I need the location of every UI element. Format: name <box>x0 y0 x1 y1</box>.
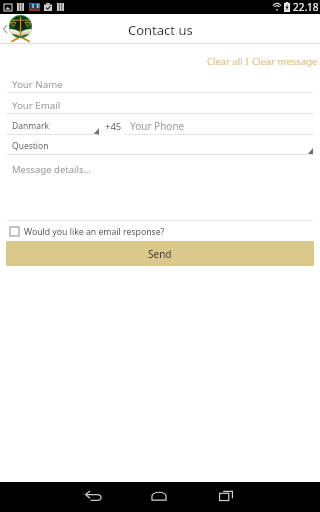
staticText: I <box>243 55 252 68</box>
button[interactable]: Back <box>0 14 9 43</box>
staticText: Your Phone <box>130 119 185 133</box>
button[interactable]: Back <box>66 480 120 510</box>
staticText: 22.18 <box>293 0 319 14</box>
button[interactable]: Clear all <box>207 55 243 68</box>
staticText: Your Name <box>12 78 63 91</box>
button[interactable]: Question <box>0 135 320 154</box>
staticText: Your Email <box>12 99 61 112</box>
staticText: Send <box>148 247 172 261</box>
staticText: Question <box>12 140 49 152</box>
button[interactable]: Recent apps <box>199 480 253 510</box>
button[interactable]: Home <box>132 480 186 510</box>
staticText: Message details... <box>12 163 92 176</box>
button[interactable]: Danmark <box>0 114 98 134</box>
button[interactable]: Your Email <box>0 93 320 113</box>
staticText: Would you like an email response? <box>24 226 165 238</box>
button[interactable]: Would you like an email response? <box>0 221 320 241</box>
staticText: Danmark <box>12 120 49 132</box>
button[interactable]: Send <box>6 241 314 266</box>
button[interactable]: Your Name <box>0 70 320 92</box>
button[interactable]: Message details... <box>0 155 320 220</box>
staticText: +45 <box>105 120 122 133</box>
staticText: Contact us <box>128 21 193 39</box>
button[interactable]: Clear message <box>252 55 318 68</box>
